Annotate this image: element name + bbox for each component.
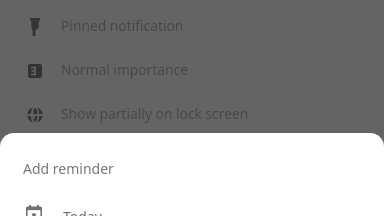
staticText: Today [63,207,102,216]
button[interactable]: Add reminder [0,144,384,192]
staticText: Pinned notification [61,16,184,35]
button[interactable]: Show partially on lock screen [0,93,384,136]
staticText: Add reminder [23,159,114,178]
button[interactable]: Pinned notification [0,5,384,48]
button[interactable]: Today [0,191,384,216]
button[interactable]: Normal importance [0,49,384,92]
staticText: Normal importance [61,60,188,79]
button[interactable]: Dismiss [0,0,384,216]
staticText: Show partially on lock screen [61,104,249,123]
